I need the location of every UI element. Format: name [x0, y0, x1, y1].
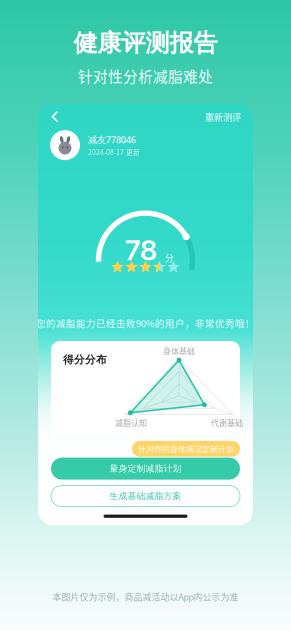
staticText: 2024-08-17 更新 — [88, 147, 140, 157]
button[interactable]: 量身定制减脂计划 — [51, 458, 240, 480]
staticText: 您的减脂能力已经击败90%的用户，非常优秀哦！ — [36, 316, 255, 330]
button[interactable]: 返回 — [47, 106, 63, 127]
button[interactable]: 生成基础减脂方案 — [51, 486, 240, 507]
staticText: 减友778046 — [88, 133, 136, 146]
staticText: 生成基础减脂方案 — [109, 491, 181, 502]
staticText: 代谢基础 — [211, 417, 243, 428]
staticText: 重新测评 — [205, 110, 241, 123]
staticText: 得分分布 — [63, 353, 107, 366]
staticText: 量身定制减脂计划 — [109, 463, 181, 474]
staticText: 健康评测报告 — [73, 28, 217, 58]
staticText: 减脂认知 — [115, 417, 147, 428]
staticText: 分 — [165, 251, 174, 264]
button[interactable]: 重新测评 — [202, 107, 244, 126]
staticText: 针对性分析减脂难处 — [78, 65, 213, 86]
staticText: 身体基础 — [163, 345, 195, 357]
staticText: 本图片仅为示例，商品减活动以App内公示为准 — [52, 590, 238, 603]
staticText: 78 — [125, 233, 158, 267]
staticText: 针对你的身体情况定制计划 — [138, 443, 234, 455]
